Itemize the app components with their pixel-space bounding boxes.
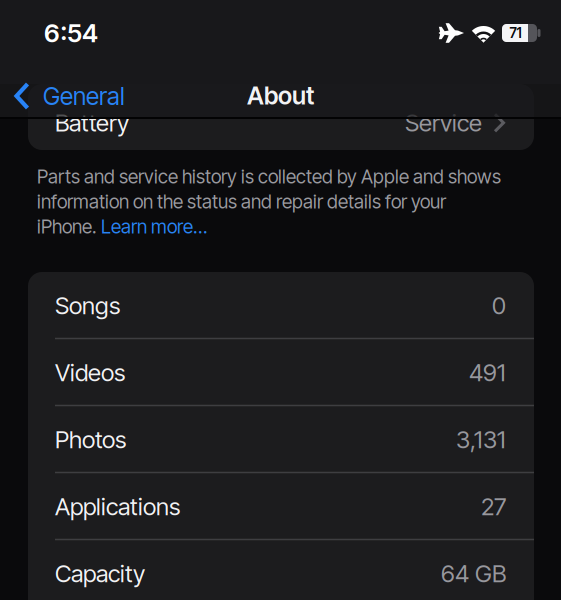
staticText: Photos (55, 425, 126, 454)
staticText: Service (405, 108, 482, 137)
staticText: Battery (55, 108, 129, 137)
staticText: Parts and service history is collected b… (37, 165, 501, 188)
staticText: About (247, 81, 314, 110)
staticText: 71 (509, 25, 521, 41)
staticText: iPhone. (37, 215, 101, 238)
button[interactable]: Battery (28, 84, 534, 150)
staticText: Songs (55, 291, 120, 320)
staticText: Videos (55, 358, 125, 387)
staticText: General (43, 81, 125, 111)
staticText: 27 (481, 492, 506, 521)
staticText: 3,131 (456, 425, 506, 454)
staticText: Capacity (55, 559, 145, 588)
button[interactable]: Back to General (14, 78, 184, 114)
staticText: 64 GB (441, 559, 506, 588)
staticText: 0 (492, 291, 506, 320)
staticText: 6:54 (44, 18, 98, 48)
staticText: information on the status and repair det… (37, 190, 446, 213)
button[interactable]: Learn more... (101, 215, 208, 238)
staticText: Applications (55, 492, 180, 521)
staticText: 491 (469, 358, 506, 387)
staticText: Learn more... (101, 215, 208, 238)
